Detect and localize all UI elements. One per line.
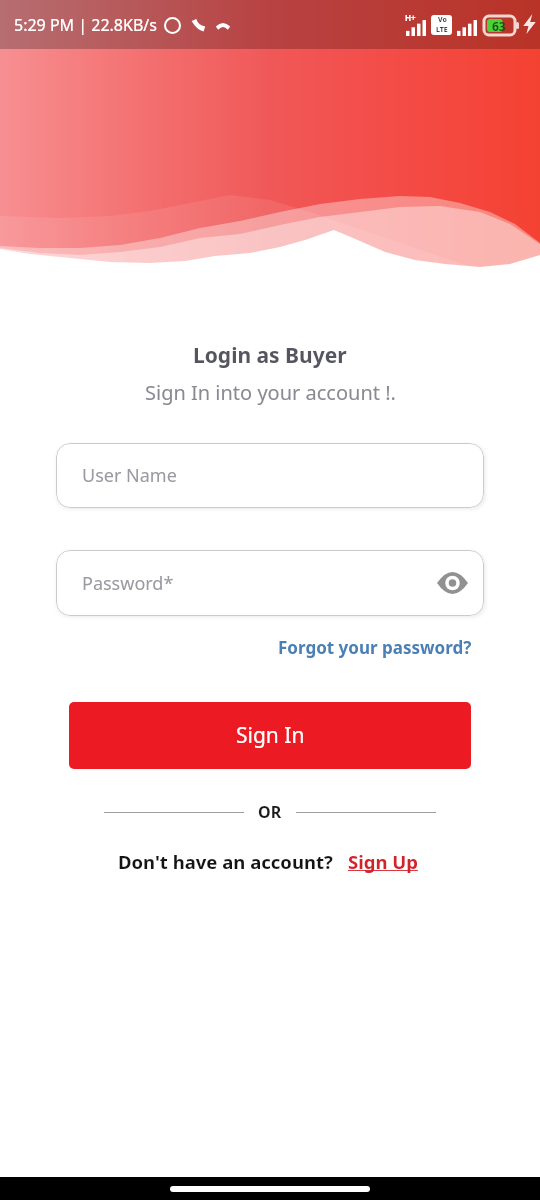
- staticText: H+: [405, 12, 416, 23]
- staticText: LTE: [436, 25, 448, 35]
- button[interactable]: Sign In: [69, 702, 471, 769]
- staticText: Sign Up: [348, 849, 423, 874]
- staticText: 63: [492, 18, 506, 34]
- staticText: Login as Buyer: [193, 341, 347, 370]
- button[interactable]: Password*: [56, 550, 484, 616]
- button[interactable]: Sign Up: [348, 849, 423, 874]
- staticText: Forgot your password?: [278, 636, 472, 659]
- staticText: Sign In into your account !.: [145, 379, 396, 406]
- staticText: Password*: [82, 571, 174, 596]
- button[interactable]: Show password: [428, 559, 476, 607]
- staticText: Vo: [438, 15, 447, 25]
- staticText: User Name: [82, 463, 177, 488]
- staticText: Sign In: [236, 721, 305, 750]
- button[interactable]: User Name: [56, 443, 484, 508]
- staticText: 5:29 PM | 22.8KB/s: [14, 14, 157, 36]
- button[interactable]: Forgot your password?: [272, 630, 478, 665]
- staticText: OR: [258, 801, 282, 823]
- staticText: Don't have an account?: [118, 849, 333, 874]
